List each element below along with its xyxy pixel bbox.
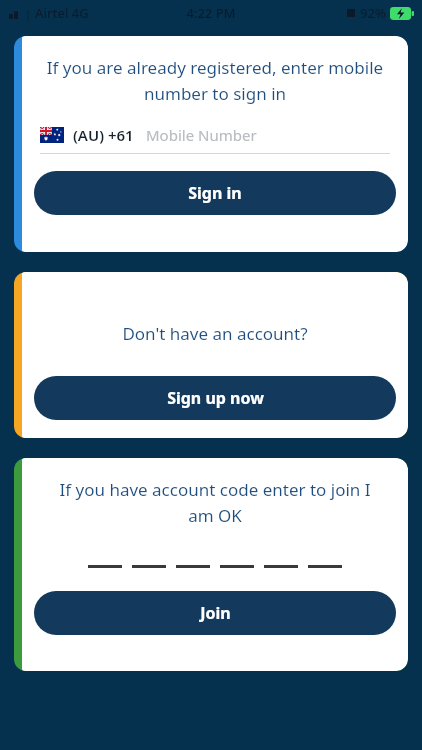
staticText: Don't have an account? (22, 322, 408, 345)
staticText: Mobile Number (146, 125, 257, 145)
staticText: | (25, 6, 32, 21)
staticText: Sign up now (167, 387, 264, 409)
staticText: Airtel 4G (35, 4, 89, 22)
staticText: 92% (360, 4, 386, 22)
button[interactable]: Sign in (34, 171, 396, 215)
staticText: Join (200, 602, 231, 624)
button[interactable]: Sign up now (34, 376, 396, 420)
staticText: 4:22 PM (186, 4, 236, 22)
staticText: If you are already registered, enter mob… (32, 56, 398, 105)
staticText: Sign in (188, 182, 242, 204)
button[interactable]: Join (34, 591, 396, 635)
staticText: If you have account code enter to join I… (32, 478, 398, 527)
staticText: (AU) +61 (73, 125, 134, 145)
